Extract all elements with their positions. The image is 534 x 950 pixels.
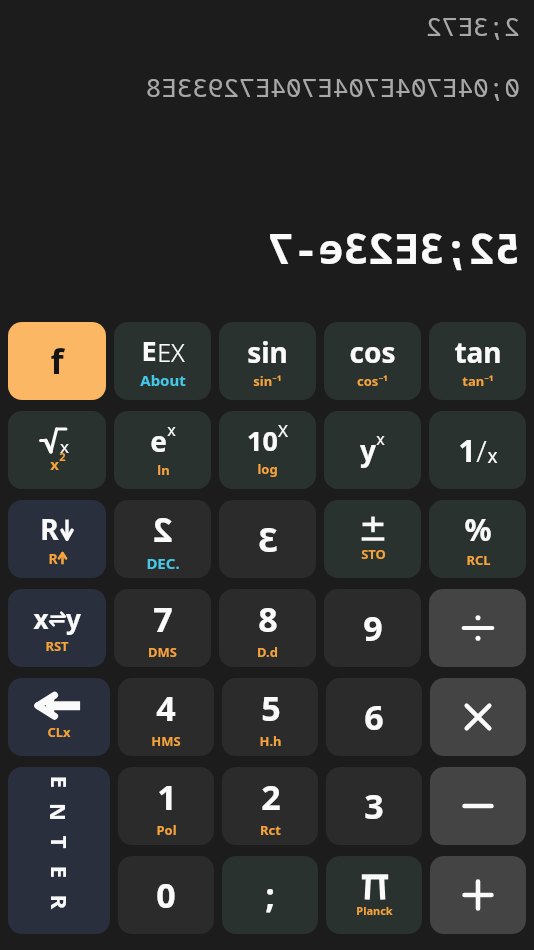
staticText: ;	[265, 872, 275, 918]
staticText: DEC.	[146, 553, 180, 573]
button[interactable]: tan	[429, 322, 526, 400]
staticText: 9	[363, 605, 383, 651]
staticText: y	[66, 601, 81, 636]
staticText: 3	[258, 516, 278, 562]
staticText: 2	[261, 774, 281, 820]
staticText: ln	[157, 461, 170, 479]
staticText: sin	[247, 333, 288, 371]
button[interactable]: e	[114, 411, 211, 489]
button[interactable]: 5	[222, 678, 318, 756]
staticText: R	[40, 510, 59, 548]
staticText: EX	[157, 335, 185, 369]
staticText: 5	[261, 685, 281, 731]
button[interactable]: CLx	[8, 678, 110, 756]
staticText: 2	[59, 449, 66, 464]
staticText: D.d	[257, 643, 278, 661]
staticText: Pol	[156, 821, 177, 839]
staticText: R	[48, 549, 58, 568]
staticText: 6	[364, 694, 384, 740]
button[interactable]: 2	[222, 767, 318, 845]
button[interactable]: Divide	[429, 589, 526, 667]
button[interactable]: E	[114, 322, 211, 400]
staticText: f	[50, 338, 64, 384]
staticText: H.h	[259, 732, 282, 750]
button[interactable]: sin	[219, 322, 316, 400]
button[interactable]: Planck	[326, 856, 422, 934]
staticText: cos	[349, 333, 396, 371]
staticText: About	[140, 370, 186, 390]
staticText: E	[44, 775, 74, 788]
button[interactable]: ;	[222, 856, 318, 934]
button[interactable]: Minus	[430, 767, 526, 845]
button[interactable]: 1	[429, 411, 526, 489]
staticText: e	[150, 422, 167, 460]
button[interactable]: 3	[219, 500, 316, 578]
staticText: E	[141, 332, 157, 369]
button[interactable]: y	[324, 411, 421, 489]
staticText: RST	[45, 637, 69, 655]
staticText: /	[476, 430, 487, 471]
staticText: R	[44, 894, 74, 909]
staticText: T	[44, 835, 74, 848]
button[interactable]: 6	[326, 678, 422, 756]
staticText: tan⁻¹	[462, 372, 494, 390]
staticText: x	[50, 454, 59, 474]
staticText: X	[278, 419, 288, 442]
staticText: 7	[153, 596, 173, 642]
staticText: Planck	[356, 903, 393, 918]
button[interactable]: 10	[219, 411, 316, 489]
button[interactable]: 8	[219, 589, 316, 667]
staticText: 1	[157, 774, 177, 820]
staticText: 8	[258, 596, 278, 642]
button[interactable]: STO	[324, 500, 421, 578]
staticText: sin⁻¹	[253, 372, 282, 390]
button[interactable]: R	[8, 500, 106, 578]
staticText: 2;3E72	[426, 8, 520, 43]
staticText: Rct	[260, 821, 281, 839]
button[interactable]: 7	[114, 589, 211, 667]
staticText: cos⁻¹	[357, 372, 388, 390]
staticText: 4	[156, 685, 176, 731]
button[interactable]: f	[8, 322, 106, 400]
staticText: HMS	[151, 732, 181, 750]
staticText: x	[33, 601, 49, 636]
staticText: x	[376, 428, 385, 450]
staticText: DMS	[148, 643, 177, 661]
staticText: %	[464, 509, 492, 550]
button[interactable]: cos	[324, 322, 421, 400]
staticText: 52;3E23e-7	[267, 219, 520, 276]
button[interactable]: Multiply	[430, 678, 526, 756]
button[interactable]: 1	[118, 767, 214, 845]
button[interactable]: 9	[324, 589, 421, 667]
button[interactable]: 4	[118, 678, 214, 756]
button[interactable]: 2	[114, 500, 211, 578]
button[interactable]: %	[429, 500, 526, 578]
staticText: 3	[364, 783, 384, 829]
staticText: x	[60, 435, 69, 458]
button[interactable]: x	[8, 411, 106, 489]
staticText: E	[44, 865, 74, 878]
staticText: 2	[153, 506, 173, 552]
staticText: N	[44, 803, 74, 821]
staticText: RCL	[466, 551, 491, 569]
staticText: STO	[361, 545, 386, 563]
button[interactable]: 0	[118, 856, 214, 934]
staticText: log	[257, 460, 278, 478]
staticText: 10	[247, 422, 278, 459]
staticText: tan	[454, 333, 502, 371]
button[interactable]: Plus	[430, 856, 526, 934]
staticText: 0	[156, 872, 176, 918]
staticText: y	[360, 431, 376, 469]
button[interactable]: 3	[326, 767, 422, 845]
staticText: 1	[458, 430, 476, 471]
button[interactable]: x	[8, 589, 106, 667]
staticText: x	[167, 419, 176, 441]
button[interactable]: E	[8, 767, 110, 934]
staticText: CLx	[47, 723, 71, 741]
staticText: x	[487, 443, 498, 469]
staticText: 0;04E704E704E704E72933E8	[14, 69, 520, 104]
